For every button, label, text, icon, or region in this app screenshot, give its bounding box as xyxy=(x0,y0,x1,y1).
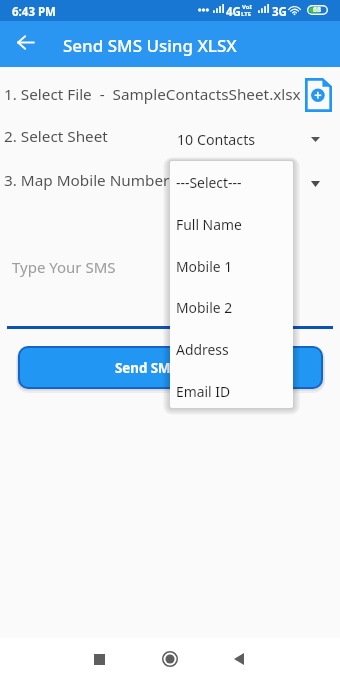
staticText: Email ID xyxy=(176,382,231,401)
button[interactable]: Full Name xyxy=(170,203,293,245)
staticText: Send SMS xyxy=(115,359,178,377)
staticText: Type Your SMS xyxy=(12,257,116,277)
staticText: VoI xyxy=(242,3,252,11)
button[interactable]: Address xyxy=(170,328,293,370)
staticText: ---Select--- xyxy=(176,173,242,192)
staticText: 4G xyxy=(226,4,241,20)
button[interactable]: Email ID xyxy=(170,370,293,408)
staticText: 68 xyxy=(313,5,322,15)
staticText: LTE xyxy=(241,10,252,18)
button[interactable]: Home xyxy=(152,641,188,677)
button[interactable]: Back xyxy=(9,26,41,58)
staticText: Address xyxy=(176,340,229,359)
button[interactable]: Mobile 1 xyxy=(170,245,293,287)
staticText: Mobile 1 xyxy=(176,257,233,276)
staticText: 3. Map Mobile Number xyxy=(4,170,170,191)
staticText: Send SMS Using XLSX xyxy=(63,34,237,57)
button[interactable]: Attach file xyxy=(305,78,332,112)
button[interactable] xyxy=(169,166,332,196)
button[interactable]: Recent apps xyxy=(81,641,117,677)
staticText: Mobile 2 xyxy=(176,298,233,317)
staticText: 3G xyxy=(272,4,287,20)
button[interactable]: 1. Select File - SampleContactsSheet.xls… xyxy=(4,84,301,105)
button[interactable]: Mobile 2 xyxy=(170,286,293,328)
button[interactable]: 10 Contacts xyxy=(169,122,332,152)
staticText: 6:43 PM xyxy=(12,4,56,20)
staticText: Full Name xyxy=(176,215,242,234)
button[interactable]: Back xyxy=(221,641,257,677)
staticText: 10 Contacts xyxy=(177,130,256,149)
button[interactable]: Send SMS xyxy=(20,348,321,387)
staticText: 2. Select Sheet xyxy=(4,126,108,147)
button[interactable]: ---Select--- xyxy=(170,161,293,203)
